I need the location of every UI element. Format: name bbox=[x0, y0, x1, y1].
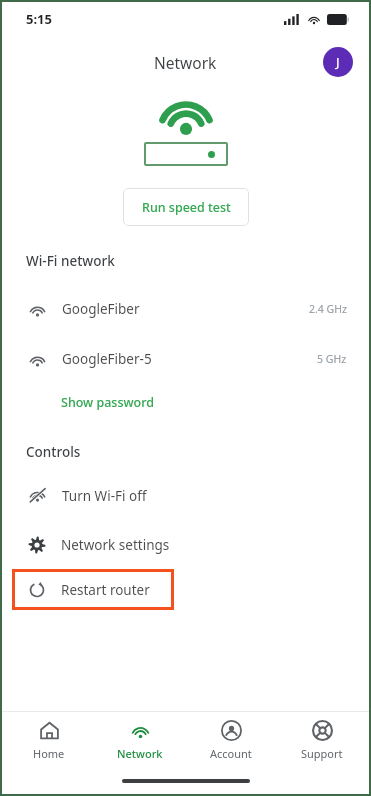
staticText: 2.4 GHz bbox=[309, 302, 347, 316]
staticText: Run speed test bbox=[142, 199, 231, 216]
button[interactable]: GoogleFiber-5 bbox=[2, 334, 369, 384]
staticText: Home bbox=[33, 746, 65, 761]
button[interactable]: Account bbox=[187, 714, 275, 767]
button[interactable]: Turn Wi-Fi off bbox=[2, 475, 369, 516]
staticText: J bbox=[336, 53, 340, 71]
staticText: 5 GHz bbox=[317, 352, 347, 366]
button[interactable]: Show password bbox=[59, 390, 157, 415]
button[interactable]: Account profile bbox=[323, 47, 353, 77]
staticText: Turn Wi-Fi off bbox=[62, 487, 147, 505]
staticText: 5:15 bbox=[26, 10, 52, 28]
staticText: Network bbox=[117, 746, 163, 761]
button[interactable]: Network settings bbox=[2, 524, 369, 565]
staticText: GoogleFiber bbox=[62, 300, 140, 318]
staticText: Network bbox=[154, 52, 217, 73]
staticText: Controls bbox=[26, 443, 81, 461]
staticText: Support bbox=[301, 746, 343, 761]
staticText: Wi-Fi network bbox=[26, 252, 115, 270]
staticText: Account bbox=[210, 746, 252, 761]
button[interactable]: Restart router bbox=[12, 569, 174, 610]
button[interactable]: Run speed test bbox=[123, 188, 249, 226]
staticText: Network settings bbox=[61, 536, 170, 554]
staticText: Show password bbox=[61, 394, 155, 411]
staticText: GoogleFiber-5 bbox=[62, 350, 152, 368]
button[interactable]: Network bbox=[96, 714, 184, 767]
staticText: Restart router bbox=[61, 581, 150, 599]
button[interactable]: Support bbox=[278, 714, 366, 767]
button[interactable]: GoogleFiber bbox=[2, 284, 369, 334]
button[interactable]: Home bbox=[5, 714, 93, 767]
